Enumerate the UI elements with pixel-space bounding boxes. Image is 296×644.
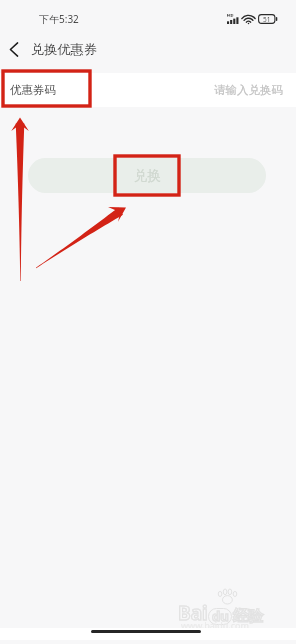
staticText: du <box>212 607 229 625</box>
staticText: 51 <box>263 15 271 24</box>
staticText: 兑换 <box>134 167 161 184</box>
staticText: www.baidu.com <box>181 619 249 631</box>
staticText: 优惠券码 <box>10 83 56 97</box>
button[interactable]: 返回 <box>0 34 28 64</box>
staticText: 下午5:32 <box>39 12 79 26</box>
button[interactable]: 优惠券码 <box>0 73 296 107</box>
staticText: Bai <box>178 600 208 626</box>
staticText: 兑换优惠券 <box>31 41 97 58</box>
staticText: 经验 <box>233 607 263 626</box>
staticText: 请输入兑换码 <box>214 83 283 97</box>
button[interactable]: 兑换 <box>28 158 266 193</box>
